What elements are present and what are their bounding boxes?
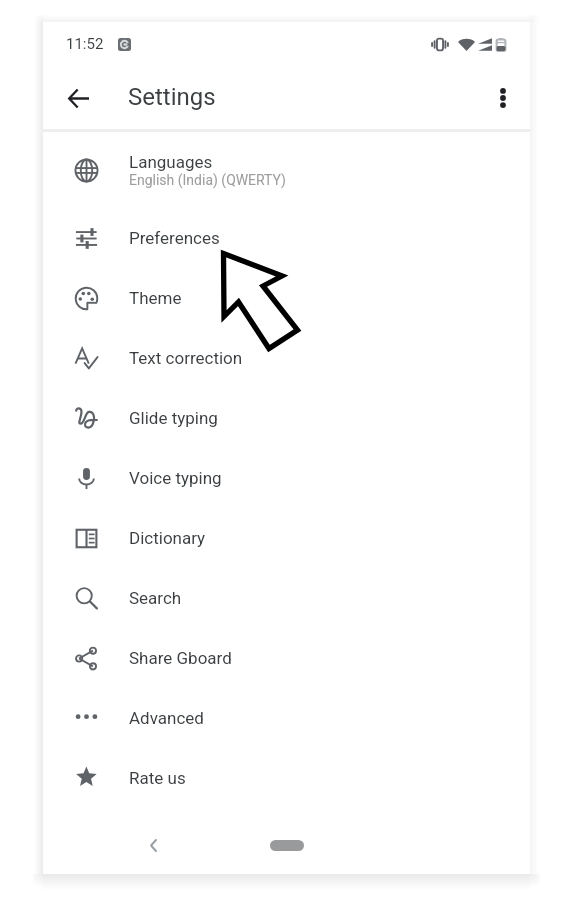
staticText: Search <box>129 588 182 608</box>
button[interactable]: Share Gboard <box>43 628 530 688</box>
staticText: 11:52 <box>66 35 104 53</box>
staticText: Rate us <box>129 768 186 788</box>
button[interactable]: Text correction <box>43 328 530 388</box>
staticText: English (India) (QWERTY) <box>129 172 286 188</box>
button[interactable]: Theme <box>43 268 530 328</box>
staticText: Settings <box>128 83 216 111</box>
staticText: Theme <box>129 288 182 308</box>
button[interactable]: Voice typing <box>43 448 530 508</box>
staticText: Share Gboard <box>129 648 232 668</box>
staticText: Text correction <box>129 348 243 368</box>
button[interactable]: Preferences <box>43 208 530 268</box>
button[interactable]: Home <box>270 840 304 851</box>
button[interactable]: Rate us <box>43 748 530 808</box>
button[interactable]: Dictionary <box>43 508 530 568</box>
staticText: Preferences <box>129 228 220 248</box>
staticText: Advanced <box>129 708 204 728</box>
button[interactable]: More options <box>480 75 526 121</box>
button[interactable]: Back <box>55 75 101 121</box>
button[interactable]: Advanced <box>43 688 530 748</box>
button[interactable]: Glide typing <box>43 388 530 448</box>
button[interactable]: Languages <box>43 132 530 208</box>
staticText: Languages <box>129 152 213 172</box>
staticText: Voice typing <box>129 468 222 488</box>
staticText: Glide typing <box>129 408 218 428</box>
button[interactable]: Search <box>43 568 530 628</box>
button[interactable]: Back <box>142 834 164 856</box>
staticText: Dictionary <box>129 528 206 548</box>
